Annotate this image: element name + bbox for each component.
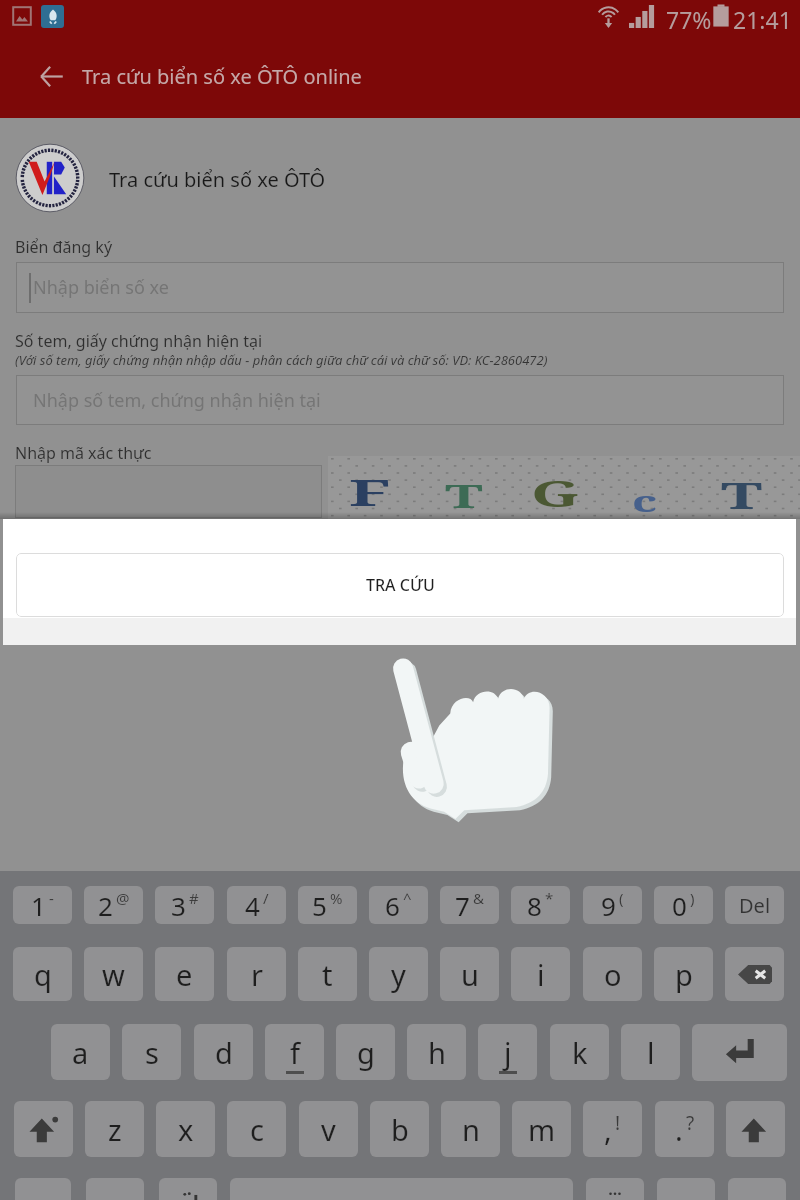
button[interactable]: 5 bbox=[298, 886, 357, 924]
staticText: t bbox=[322, 955, 333, 994]
staticText: , bbox=[604, 1110, 612, 1149]
button[interactable]: Back bbox=[25, 50, 77, 102]
staticText: 5 bbox=[312, 888, 327, 923]
staticText: x bbox=[178, 1110, 194, 1149]
button[interactable]: u bbox=[440, 947, 499, 1001]
button[interactable]: x bbox=[156, 1101, 215, 1157]
button[interactable]: c bbox=[227, 1101, 286, 1157]
button[interactable]: Shift bbox=[14, 1101, 73, 1157]
staticText: ( bbox=[619, 888, 624, 908]
button[interactable]: y bbox=[369, 947, 428, 1001]
button[interactable]: e bbox=[155, 947, 214, 1001]
button[interactable]: Nhập số tem, chứng nhận hiện tại bbox=[16, 375, 784, 425]
staticText: b bbox=[391, 1110, 409, 1149]
button[interactable]: Voice input bbox=[159, 1178, 217, 1200]
staticText: y bbox=[391, 955, 406, 994]
button[interactable]: z bbox=[85, 1101, 144, 1157]
staticText: 7 bbox=[455, 888, 470, 923]
button[interactable]: f bbox=[265, 1024, 324, 1080]
button[interactable]: h bbox=[407, 1024, 466, 1080]
staticText: m bbox=[528, 1110, 556, 1149]
staticText: / bbox=[263, 888, 269, 908]
staticText: h bbox=[428, 1033, 446, 1072]
button[interactable]: 8 bbox=[511, 886, 570, 924]
button[interactable]: j bbox=[478, 1024, 537, 1080]
button[interactable]: b bbox=[370, 1101, 429, 1157]
button[interactable]: Backspace bbox=[725, 947, 784, 1001]
staticText: Nhập số tem, chứng nhận hiện tại bbox=[33, 388, 321, 413]
button[interactable]: Symbols bbox=[15, 1178, 71, 1200]
button[interactable]: v bbox=[299, 1101, 358, 1157]
staticText: z bbox=[108, 1110, 122, 1149]
button[interactable]: Delete bbox=[725, 886, 784, 924]
staticText: 9 bbox=[601, 888, 616, 923]
button[interactable]: 2 bbox=[84, 886, 143, 924]
button[interactable]: k bbox=[550, 1024, 609, 1080]
button[interactable]: r bbox=[227, 947, 286, 1001]
button[interactable]: Shift bbox=[726, 1101, 785, 1157]
button[interactable]: w bbox=[84, 947, 143, 1001]
button[interactable]: a bbox=[51, 1024, 110, 1080]
staticText: f bbox=[290, 1033, 300, 1072]
button[interactable]: g bbox=[336, 1024, 395, 1080]
button[interactable]: n bbox=[441, 1101, 500, 1157]
button[interactable]: i bbox=[511, 947, 570, 1001]
button[interactable]: t bbox=[298, 947, 357, 1001]
staticText: i bbox=[537, 955, 545, 994]
staticText: a bbox=[72, 1033, 89, 1072]
button[interactable]: s bbox=[122, 1024, 181, 1080]
staticText: ! bbox=[615, 1110, 621, 1136]
button[interactable]: m bbox=[512, 1101, 571, 1157]
button[interactable]: TRA CỨU bbox=[16, 553, 784, 617]
button[interactable]: Captcha input bbox=[15, 465, 322, 518]
staticText: d bbox=[215, 1033, 233, 1072]
staticText: TRA CỨU bbox=[366, 574, 435, 596]
button[interactable]: 0 bbox=[654, 886, 713, 924]
button[interactable]: 9 bbox=[583, 886, 642, 924]
staticText: Số tem, giấy chứng nhận hiện tại bbox=[15, 330, 263, 352]
staticText: r bbox=[251, 955, 263, 994]
button[interactable]: More options bbox=[586, 1178, 644, 1200]
staticText: j bbox=[504, 1033, 512, 1072]
staticText: u bbox=[461, 955, 479, 994]
staticText: Nhập biển số xe bbox=[33, 275, 169, 300]
button[interactable]: p bbox=[654, 947, 713, 1001]
staticText: Tra cứu biển số xe ÔTÔ bbox=[109, 166, 326, 193]
button[interactable]: 4 bbox=[227, 886, 286, 924]
staticText: p bbox=[675, 955, 693, 994]
staticText: T bbox=[445, 473, 483, 518]
staticText: 77% bbox=[666, 4, 712, 35]
staticText: 2 bbox=[98, 888, 113, 923]
button[interactable]: q bbox=[13, 947, 72, 1001]
button[interactable]: l bbox=[621, 1024, 680, 1080]
staticText: c bbox=[632, 481, 658, 520]
button[interactable]: Nhập biển số xe bbox=[16, 262, 784, 313]
staticText: g bbox=[357, 1033, 375, 1072]
button[interactable]: o bbox=[583, 947, 642, 1001]
button[interactable]: 7 bbox=[440, 886, 499, 924]
button[interactable]: d bbox=[194, 1024, 253, 1080]
staticText: c bbox=[250, 1110, 264, 1149]
button[interactable]: Enter bbox=[692, 1024, 787, 1081]
staticText: G bbox=[531, 469, 580, 518]
button[interactable]: 1 bbox=[13, 886, 72, 924]
staticText: ^ bbox=[403, 888, 412, 908]
staticText: Tra cứu biển số xe ÔTÔ online bbox=[82, 63, 362, 90]
button[interactable]: 3 bbox=[155, 886, 214, 924]
button[interactable]: . bbox=[655, 1101, 714, 1157]
staticText: q bbox=[34, 955, 52, 994]
staticText: (Với số tem, giấy chứng nhận nhập dấu - … bbox=[15, 351, 548, 369]
staticText: v bbox=[321, 1110, 336, 1149]
staticText: 21:41 bbox=[733, 4, 792, 35]
button[interactable]: , bbox=[583, 1101, 642, 1157]
staticText: . bbox=[675, 1110, 683, 1149]
staticText: 6 bbox=[385, 888, 400, 923]
staticText: Biển đăng ký bbox=[15, 236, 113, 258]
staticText: & bbox=[473, 888, 484, 908]
button[interactable]: 6 bbox=[369, 886, 428, 924]
staticText: 1 bbox=[31, 888, 46, 923]
